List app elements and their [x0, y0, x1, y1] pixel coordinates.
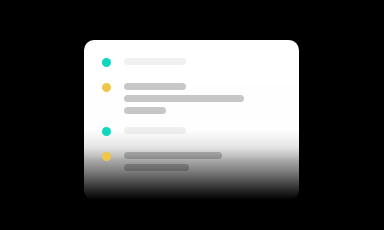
button[interactable]: Item one	[102, 58, 186, 67]
button[interactable]: Item four	[102, 152, 222, 171]
button[interactable]: Item two	[102, 83, 244, 114]
button[interactable]: Item three	[102, 127, 186, 136]
